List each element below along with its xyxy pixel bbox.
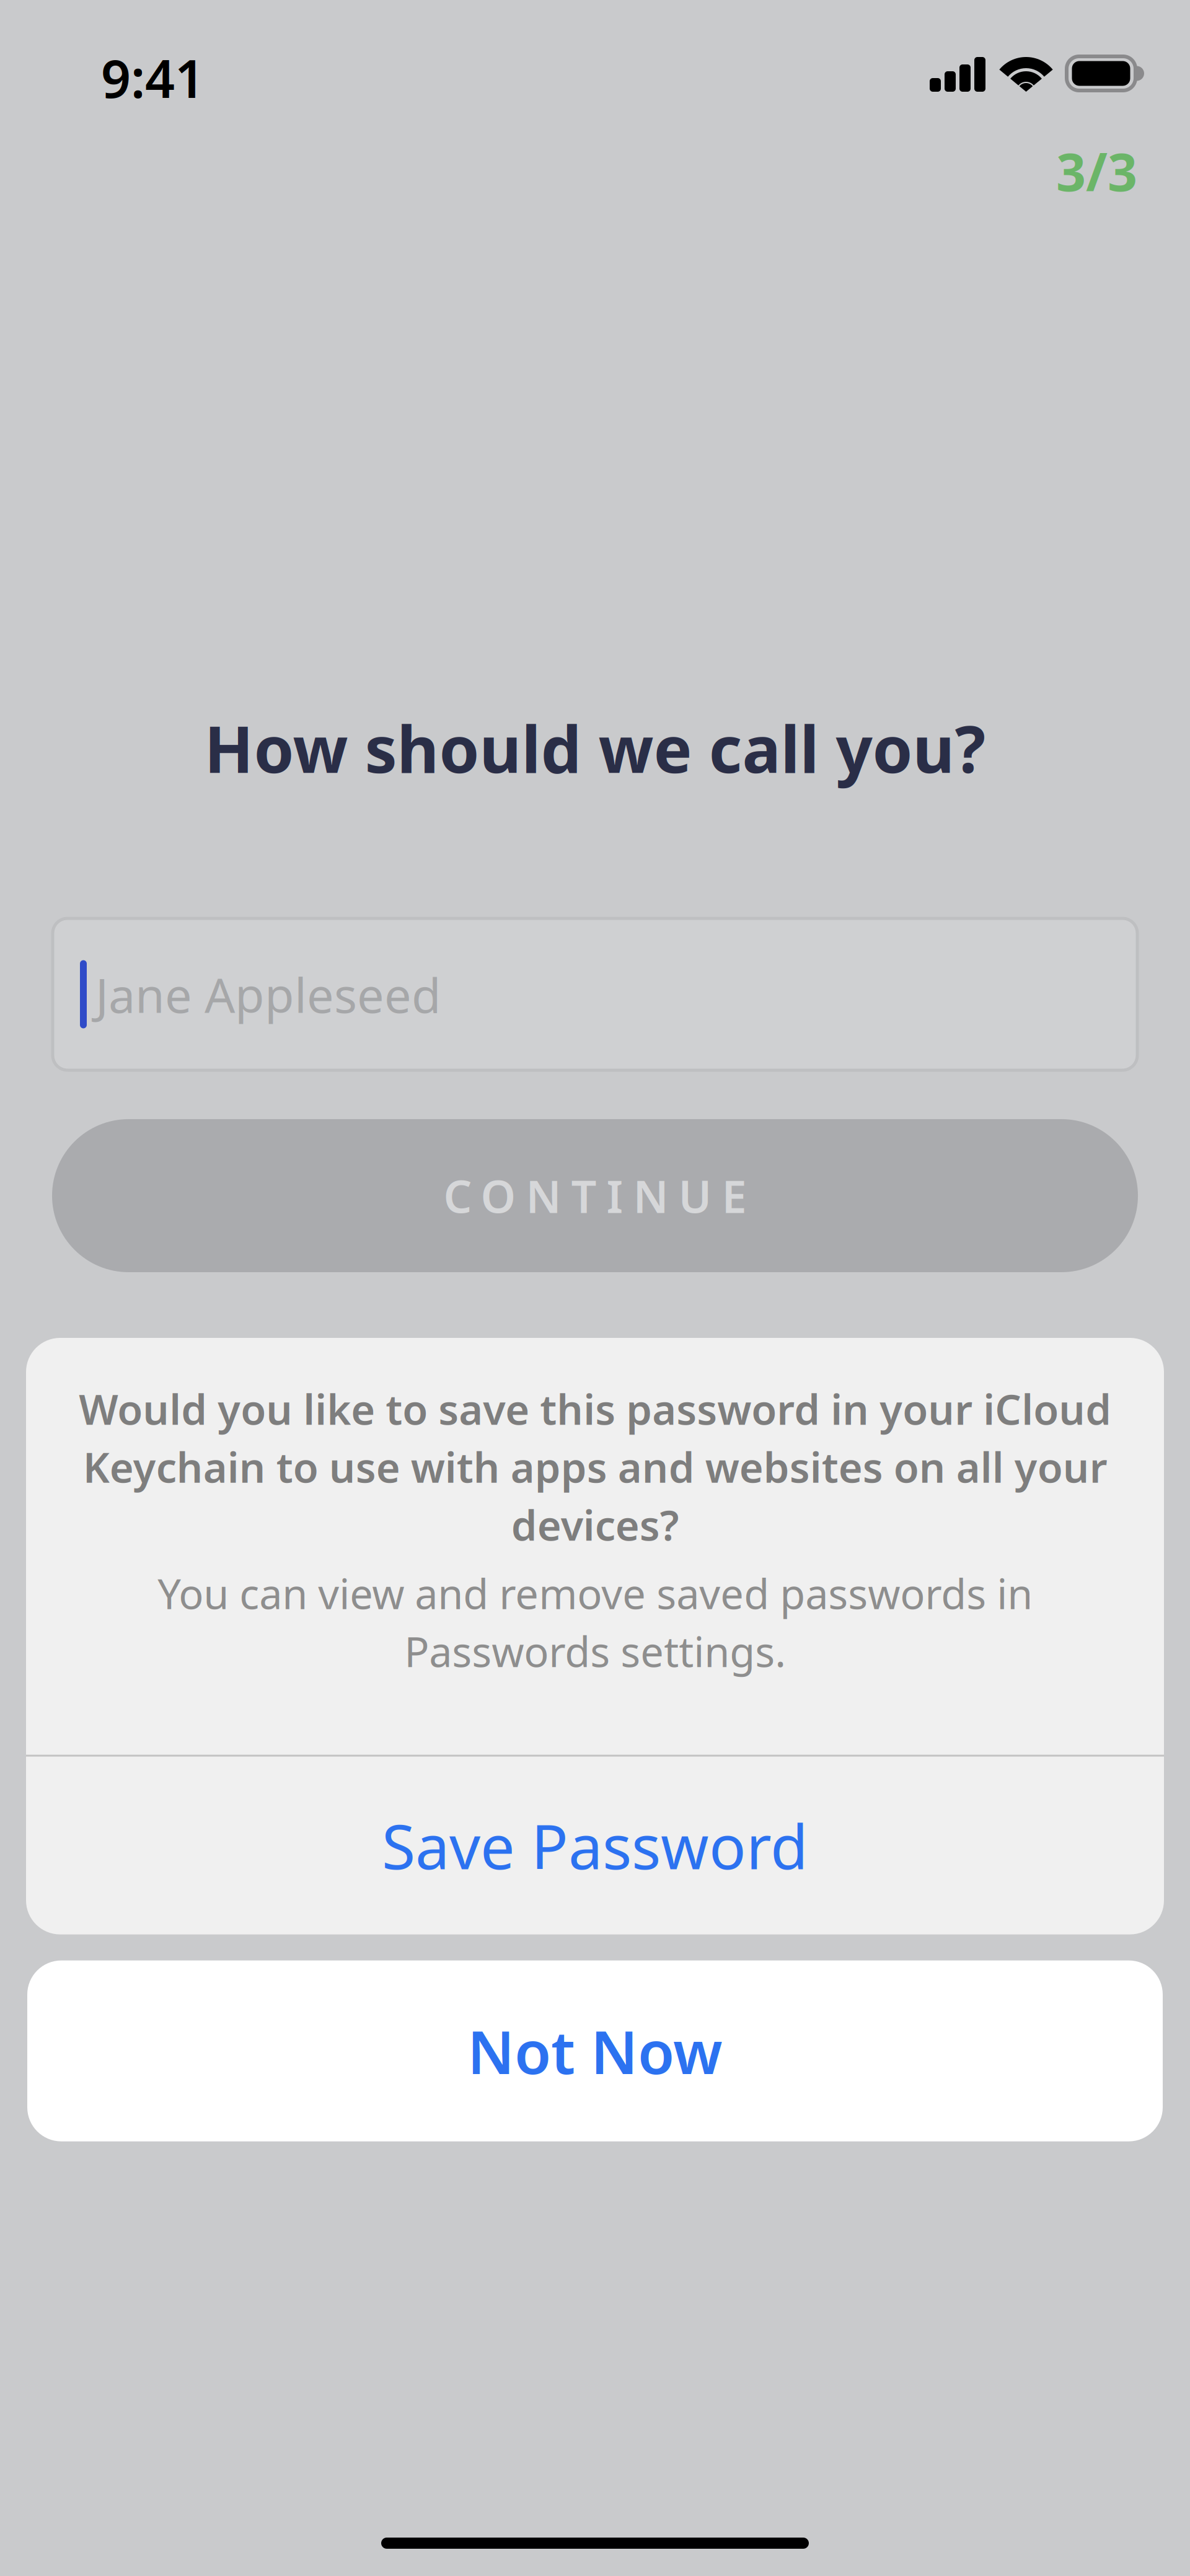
button[interactable]: Save Password [26,1757,1164,1934]
staticText: Jane Appleseed [95,962,441,1026]
button[interactable]: CONTINUE [52,1119,1138,1272]
staticText: Not Now [467,2011,723,2090]
staticText: Save Password [382,1805,808,1886]
staticText: 3/3 [1056,136,1137,206]
staticText: CONTINUE [443,1166,747,1225]
staticText: Would you like to save this password in … [79,1381,1111,1552]
button[interactable]: Not Now [27,1960,1163,2141]
staticText: You can view and remove saved passwords … [157,1566,1033,1679]
staticText: How should we call you? [204,705,986,791]
staticText: 9:41 [101,43,205,112]
